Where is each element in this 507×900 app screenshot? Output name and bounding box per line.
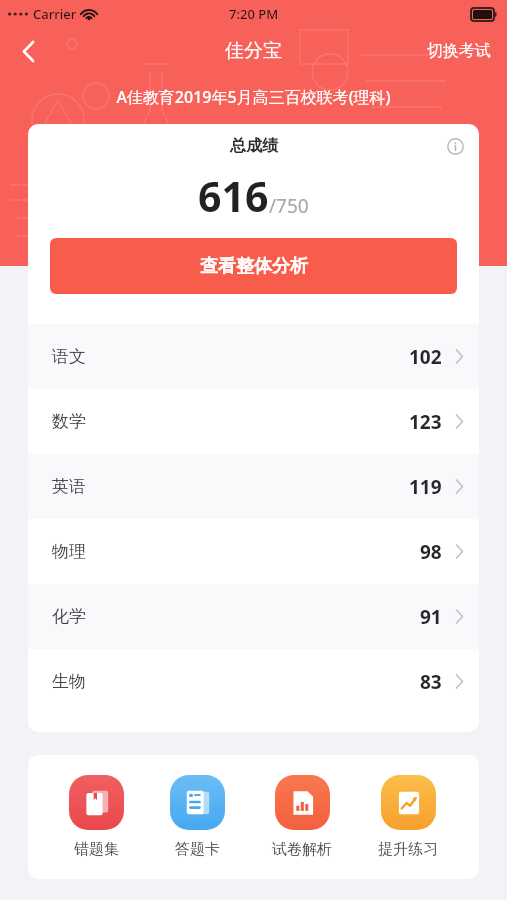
button[interactable]: Info	[439, 130, 471, 162]
button[interactable]: 语文	[28, 324, 479, 389]
button[interactable]: 答题卡	[164, 775, 231, 859]
staticText: 英语	[52, 476, 86, 497]
staticText: 83	[420, 669, 442, 695]
staticText: 数学	[52, 411, 86, 432]
button[interactable]: 数学	[28, 389, 479, 454]
button[interactable]: 试卷解析	[266, 775, 338, 859]
staticText: 91	[420, 604, 442, 630]
staticText: 查看整体分析	[200, 255, 308, 278]
staticText: 98	[420, 539, 442, 565]
staticText: Carrier	[33, 5, 77, 23]
staticText: 化学	[52, 606, 86, 627]
staticText: 语文	[52, 346, 86, 367]
button[interactable]: 切换考试	[423, 35, 495, 67]
staticText: 物理	[52, 541, 86, 562]
button[interactable]: 提升练习	[372, 775, 444, 859]
staticText: /750	[269, 193, 309, 219]
staticText: 错题集	[74, 840, 119, 859]
button[interactable]: 英语	[28, 454, 479, 519]
staticText: 答题卡	[175, 840, 220, 859]
button[interactable]: 查看整体分析	[50, 238, 457, 294]
staticText: 123	[409, 409, 442, 435]
staticText: A佳教育2019年5月高三百校联考(理科)	[116, 86, 391, 108]
staticText: 试卷解析	[272, 840, 332, 859]
staticText: 提升练习	[378, 840, 438, 859]
button[interactable]: 化学	[28, 584, 479, 649]
button[interactable]: 生物	[28, 649, 479, 714]
staticText: 7:20 PM	[229, 5, 279, 23]
staticText: 119	[409, 474, 442, 500]
staticText: 102	[409, 344, 442, 370]
button[interactable]: 物理	[28, 519, 479, 584]
staticText: 切换考试	[427, 41, 491, 61]
button[interactable]: Back	[6, 29, 50, 73]
staticText: 生物	[52, 671, 86, 692]
staticText: 总成绩	[230, 136, 278, 156]
button[interactable]: 错题集	[63, 775, 130, 859]
staticText: 佳分宝	[225, 39, 282, 63]
staticText: 616	[198, 168, 269, 224]
